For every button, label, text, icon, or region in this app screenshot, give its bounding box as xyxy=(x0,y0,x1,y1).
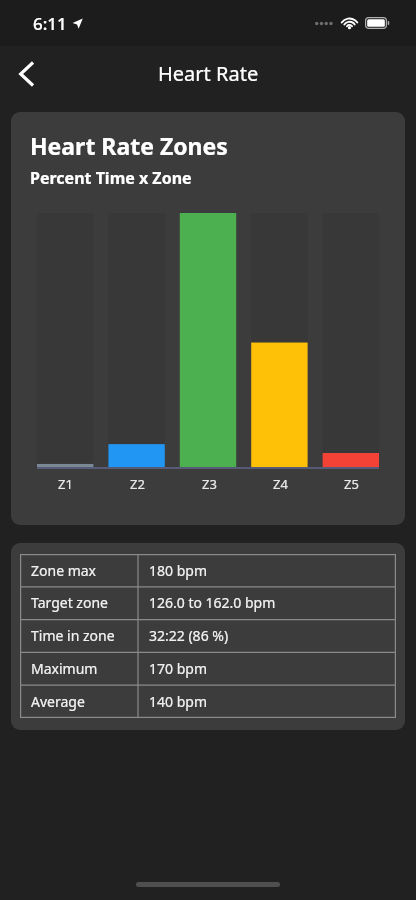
button[interactable]: Zone max xyxy=(20,554,396,586)
staticText: Heart Rate xyxy=(158,60,259,87)
staticText: 32:22 (86 %) xyxy=(149,626,229,645)
staticText: 140 bpm xyxy=(149,692,207,711)
staticText: 126.0 to 162.0 bpm xyxy=(149,593,276,612)
staticText: Heart Rate Zones xyxy=(30,130,228,161)
staticText: Z1 xyxy=(58,475,73,493)
staticText: Target zone xyxy=(31,593,108,612)
staticText: Maximum xyxy=(31,659,98,678)
staticText: Average xyxy=(31,692,85,711)
button[interactable]: Time in zone xyxy=(20,619,396,652)
staticText: 170 bpm xyxy=(149,659,207,678)
button[interactable]: Average xyxy=(20,685,396,718)
staticText: 180 bpm xyxy=(149,561,207,580)
staticText: Percent Time x Zone xyxy=(30,167,192,189)
staticText: 6:11 xyxy=(33,12,67,35)
staticText: Z2 xyxy=(130,475,145,493)
staticText: Z4 xyxy=(273,475,288,493)
staticText: Z5 xyxy=(344,475,359,493)
button[interactable]: Maximum xyxy=(20,652,396,685)
button[interactable]: Target zone xyxy=(20,586,396,619)
staticText: Z3 xyxy=(202,475,217,493)
staticText: Time in zone xyxy=(31,626,115,645)
staticText: Zone max xyxy=(31,561,97,580)
button[interactable]: Back xyxy=(0,48,52,100)
